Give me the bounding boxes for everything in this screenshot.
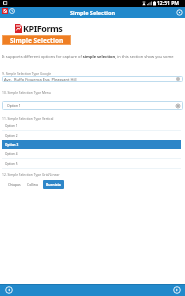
button[interactable]: Collina <box>26 180 39 189</box>
button[interactable]: Next <box>173 286 181 294</box>
staticText: Option 1 <box>5 124 18 128</box>
button[interactable]: Option 3 <box>2 140 181 149</box>
staticText: 10. Simple Selection Type Menu <box>2 90 51 94</box>
staticText: Buenista <box>46 182 61 187</box>
staticText: Option 2 <box>5 134 18 138</box>
button[interactable]: Chiapas <box>7 180 22 189</box>
staticText: Option 4 <box>5 152 18 156</box>
staticText: 12:51 PM <box>157 0 179 7</box>
button[interactable]: Option 1 <box>2 101 183 110</box>
staticText: Simple Selection <box>10 36 64 45</box>
button[interactable]: Option 2 <box>2 131 181 140</box>
button[interactable]: Ave. Ruffo Figueroa Esq. Pleassant Hill <box>2 76 183 82</box>
button[interactable]: Option 1 <box>2 121 181 130</box>
staticText: KPIForms <box>23 22 63 34</box>
button[interactable]: KPIForms <box>2 8 8 14</box>
staticText: 9. Simple Selection Type Google <box>2 71 52 75</box>
button[interactable]: Option 5 <box>2 159 181 168</box>
staticText: Option 3 <box>5 143 19 147</box>
button[interactable]: Buenista <box>43 180 64 189</box>
staticText: Ave. Ruffo Figueroa Esq. Pleassant Hill <box>4 77 77 82</box>
staticText: Chiapas <box>8 182 21 187</box>
button[interactable]: Back <box>5 286 13 294</box>
staticText: Collina <box>27 182 38 187</box>
staticText: 12. Simple Selection Type Grid/Linear <box>2 172 60 176</box>
staticText: Simple Selection <box>70 9 115 16</box>
button[interactable]: History <box>9 8 15 14</box>
staticText: 11. Simple Selection Type Vertical <box>2 116 54 120</box>
button[interactable]: Option 4 <box>2 149 181 158</box>
staticText: It supports different options for captur… <box>2 54 185 59</box>
staticText: Option 5 <box>5 162 18 166</box>
button[interactable]: More options <box>176 9 183 16</box>
staticText: Option 1 <box>7 103 21 108</box>
